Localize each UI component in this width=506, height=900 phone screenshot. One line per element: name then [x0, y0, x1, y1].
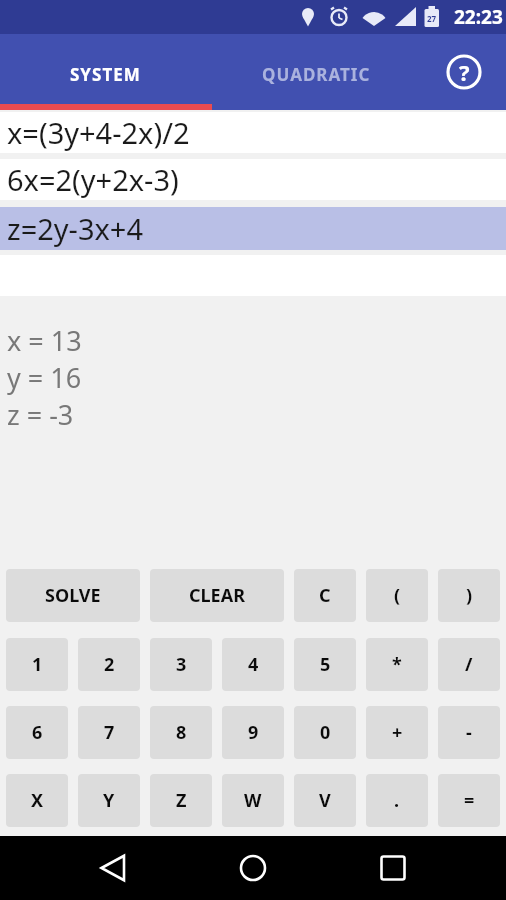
button[interactable]: Y — [78, 774, 140, 827]
button[interactable]: / — [438, 638, 500, 691]
staticText: x = 13 y = 16 z = -3 — [7, 322, 82, 433]
staticText: 9 — [248, 720, 259, 745]
button[interactable]: 0 — [294, 706, 356, 759]
staticText: 3 — [176, 652, 187, 677]
staticText: . — [394, 788, 400, 813]
button[interactable] — [81, 836, 145, 900]
button[interactable]: . — [366, 774, 428, 827]
button[interactable]: 4 — [222, 638, 284, 691]
button[interactable]: C — [294, 569, 356, 622]
staticText: SOLVE — [45, 583, 101, 608]
staticText: 8 — [176, 720, 187, 745]
staticText: 22:23 — [454, 4, 503, 30]
button[interactable]: ) — [438, 569, 500, 622]
button[interactable]: 2 — [78, 638, 140, 691]
staticText: C — [319, 583, 331, 608]
staticText: X — [31, 788, 44, 813]
button[interactable]: Z — [150, 774, 212, 827]
button[interactable]: CLEAR — [150, 569, 284, 622]
button[interactable]: 8 — [150, 706, 212, 759]
staticText: 2 — [104, 652, 115, 677]
staticText: 27 — [427, 13, 437, 24]
button[interactable]: 5 — [294, 638, 356, 691]
staticText: 5 — [320, 652, 331, 677]
staticText: CLEAR — [189, 583, 245, 608]
button[interactable]: V — [294, 774, 356, 827]
button[interactable]: * — [366, 638, 428, 691]
button[interactable]: = — [438, 774, 500, 827]
staticText: * — [392, 652, 402, 677]
button[interactable]: + — [366, 706, 428, 759]
staticText: ) — [466, 583, 473, 608]
button[interactable]: SYSTEM — [0, 34, 211, 110]
button[interactable]: 3 — [150, 638, 212, 691]
staticText: W — [244, 788, 262, 813]
button[interactable]: X — [6, 774, 68, 827]
staticText: 6 — [32, 720, 43, 745]
button[interactable]: z=2y-3x+4 — [0, 207, 506, 250]
staticText: 0 — [320, 720, 331, 745]
staticText: SYSTEM — [70, 63, 141, 86]
staticText: = — [464, 788, 475, 813]
button[interactable]: 7 — [78, 706, 140, 759]
staticText: QUADRATIC — [262, 63, 371, 86]
staticText: x=(3y+4-2x)/2 — [7, 113, 190, 152]
button[interactable]: SOLVE — [6, 569, 140, 622]
staticText: ? — [459, 57, 470, 87]
staticText: z=2y-3x+4 — [7, 209, 144, 248]
button[interactable]: W — [222, 774, 284, 827]
staticText: ( — [394, 583, 401, 608]
button[interactable]: ( — [366, 569, 428, 622]
staticText: Y — [103, 788, 115, 813]
button[interactable]: 6 — [6, 706, 68, 759]
staticText: Z — [176, 788, 187, 813]
button[interactable] — [221, 836, 285, 900]
staticText: V — [319, 788, 331, 813]
staticText: / — [465, 652, 473, 677]
staticText: - — [466, 720, 472, 745]
staticText: 1 — [32, 652, 43, 677]
button[interactable]: QUADRATIC — [211, 34, 422, 110]
button[interactable]: 6x=2(y+2x-3) — [0, 159, 506, 200]
staticText: 4 — [248, 652, 259, 677]
button[interactable]: x=(3y+4-2x)/2 — [0, 112, 506, 153]
button[interactable]: ? — [422, 34, 506, 110]
staticText: + — [392, 720, 403, 745]
staticText: 6x=2(y+2x-3) — [7, 160, 179, 199]
button[interactable] — [361, 836, 425, 900]
button[interactable]: - — [438, 706, 500, 759]
button[interactable]: 9 — [222, 706, 284, 759]
button[interactable]: 1 — [6, 638, 68, 691]
staticText: 7 — [104, 720, 115, 745]
